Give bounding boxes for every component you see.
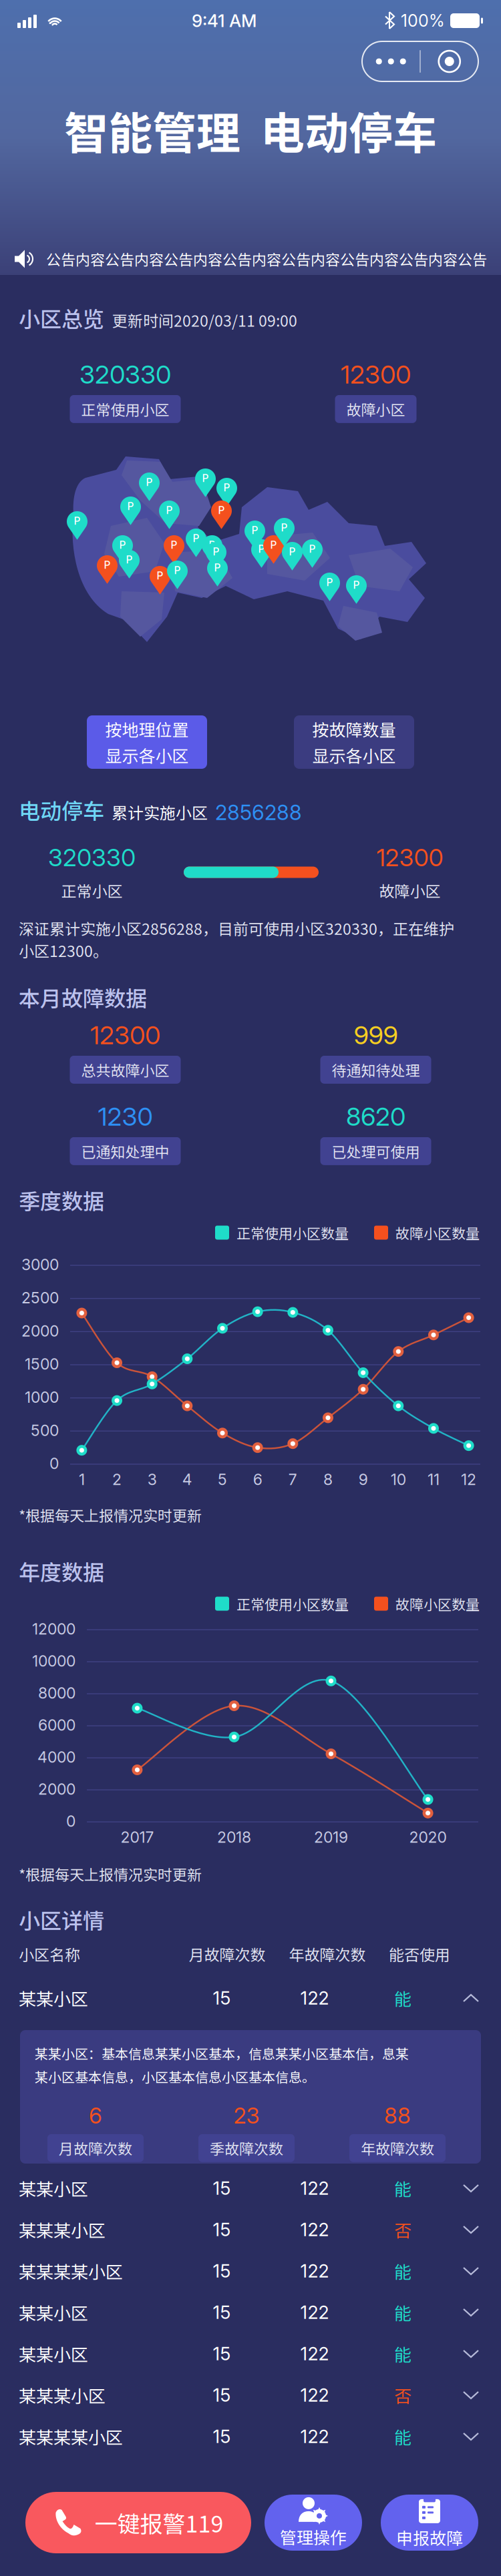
staticText: P xyxy=(104,559,111,571)
staticText: 7 xyxy=(288,1470,297,1489)
staticText: P xyxy=(209,539,215,551)
button[interactable]: 某某某小区 xyxy=(0,2374,501,2416)
staticText: 15 xyxy=(213,1987,231,2009)
staticText: 已通知处理中 xyxy=(81,1141,169,1162)
staticText: 电动停车 xyxy=(19,794,104,825)
staticText: 122 xyxy=(300,2260,329,2282)
staticText: 能否使用 xyxy=(389,1943,450,1965)
button[interactable]: 某某某某小区 xyxy=(0,2250,501,2292)
staticText: 12 xyxy=(461,1470,476,1489)
staticText: 总共故障小区 xyxy=(81,1059,169,1080)
staticText: 8000 xyxy=(38,1684,75,1702)
staticText: 122 xyxy=(300,2426,329,2447)
button[interactable]: 一键报警119 xyxy=(25,2492,251,2553)
staticText: 3000 xyxy=(21,1255,59,1274)
staticText: 122 xyxy=(300,2384,329,2406)
staticText: 12300 xyxy=(376,843,443,872)
staticText: 15 xyxy=(213,2426,231,2447)
button[interactable]: 申报故障 xyxy=(381,2495,478,2551)
staticText: 故障小区 xyxy=(379,879,441,902)
staticText: 月故障次数 xyxy=(189,1943,266,1965)
staticText: 年故障次数 xyxy=(289,1943,366,1965)
staticText: 年故障次数 xyxy=(361,2137,434,2159)
staticText: 季故障次数 xyxy=(210,2137,283,2159)
staticText: 6 xyxy=(89,2102,102,2129)
staticText: *根据每天上报情况实时更新 xyxy=(19,1863,202,1885)
staticText: 故障小区 xyxy=(346,398,405,420)
staticText: 本月故障数据 xyxy=(19,982,147,1012)
staticText: 某某某某小区 xyxy=(19,2424,123,2449)
staticText: 正常使用小区 xyxy=(81,398,169,420)
staticText: 122 xyxy=(300,2219,329,2241)
staticText: 0 xyxy=(49,1454,59,1473)
staticText: 能 xyxy=(394,1986,411,2011)
button[interactable]: More and Close xyxy=(362,41,478,81)
staticText: 12000 xyxy=(32,1620,75,1638)
staticText: 能 xyxy=(394,2341,411,2366)
button[interactable]: 管理操作 xyxy=(265,2495,362,2551)
staticText: P xyxy=(157,569,163,582)
button[interactable]: 某某某小区 xyxy=(0,2209,501,2250)
staticText: 9 xyxy=(358,1470,368,1489)
staticText: 正常使用小区数量 xyxy=(236,1594,349,1614)
staticText: 月故障次数 xyxy=(59,2137,132,2159)
staticText: P xyxy=(74,515,80,527)
staticText: 否 xyxy=(394,2383,411,2408)
staticText: 320330 xyxy=(79,359,171,390)
staticText: 某某小区 xyxy=(19,2176,88,2201)
staticText: 15 xyxy=(213,2260,231,2282)
staticText: 累计实施小区 xyxy=(112,800,208,824)
staticText: 显示各小区 xyxy=(312,743,396,767)
staticText: 15 xyxy=(213,2302,231,2323)
staticText: 5 xyxy=(218,1470,227,1489)
staticText: 1230 xyxy=(98,1101,153,1132)
staticText: 某某某小区 xyxy=(19,2383,106,2408)
staticText: P xyxy=(126,553,133,566)
button[interactable]: 某某小区 xyxy=(0,2292,501,2333)
staticText: 23 xyxy=(233,2102,260,2129)
staticText: 智能管理 电动停车 xyxy=(64,98,437,162)
staticText: 6000 xyxy=(38,1716,75,1734)
staticText: 按地理位置 xyxy=(105,717,189,741)
staticText: P xyxy=(146,476,153,489)
staticText: 4 xyxy=(182,1470,192,1489)
button[interactable]: 某某某某小区 xyxy=(0,2416,501,2457)
staticText: 一键报警119 xyxy=(95,2506,223,2539)
button[interactable]: 某某小区 xyxy=(0,2333,501,2374)
staticText: 0 xyxy=(66,1812,75,1830)
staticText: 某小区基本信息，小区基本信息小区基本信息。 xyxy=(35,2067,315,2086)
staticText: 1 xyxy=(79,1470,85,1489)
staticText: P xyxy=(202,472,209,485)
staticText: 999 xyxy=(354,1020,398,1050)
staticText: P xyxy=(289,545,296,558)
staticText: 故障小区数量 xyxy=(395,1222,480,1243)
staticText: 1500 xyxy=(25,1355,59,1373)
staticText: 小区名称 xyxy=(19,1943,80,1965)
staticText: 2856288 xyxy=(215,800,302,825)
staticText: 更新时间2020/03/11 09:00 xyxy=(112,309,297,331)
staticText: 8620 xyxy=(346,1101,405,1132)
staticText: 8 xyxy=(323,1470,333,1489)
staticText: P xyxy=(309,543,316,555)
staticText: 500 xyxy=(31,1421,59,1440)
button[interactable]: 某某小区 xyxy=(0,2168,501,2209)
staticText: 2000 xyxy=(38,1780,75,1798)
staticText: 122 xyxy=(300,2343,329,2365)
staticText: 小区详情 xyxy=(19,1904,104,1935)
staticText: 故障小区数量 xyxy=(395,1594,480,1614)
staticText: 某某某某小区 xyxy=(19,2258,123,2284)
staticText: 320330 xyxy=(48,843,136,872)
button[interactable]: 某某小区 xyxy=(0,1977,501,2019)
staticText: 管理操作 xyxy=(280,2525,347,2549)
button[interactable]: 按故障数量 xyxy=(294,715,414,769)
staticText: 10 xyxy=(391,1470,406,1489)
staticText: 2017 xyxy=(121,1828,154,1847)
staticText: 能 xyxy=(394,2258,411,2284)
staticText: 能 xyxy=(394,2300,411,2325)
staticText: 否 xyxy=(394,2217,411,2242)
staticText: 12300 xyxy=(90,1020,160,1050)
staticText: 某某小区 xyxy=(19,2341,88,2366)
staticText: 待通知待处理 xyxy=(332,1059,420,1080)
staticText: 能 xyxy=(394,2176,411,2201)
button[interactable]: 按地理位置 xyxy=(87,715,207,769)
